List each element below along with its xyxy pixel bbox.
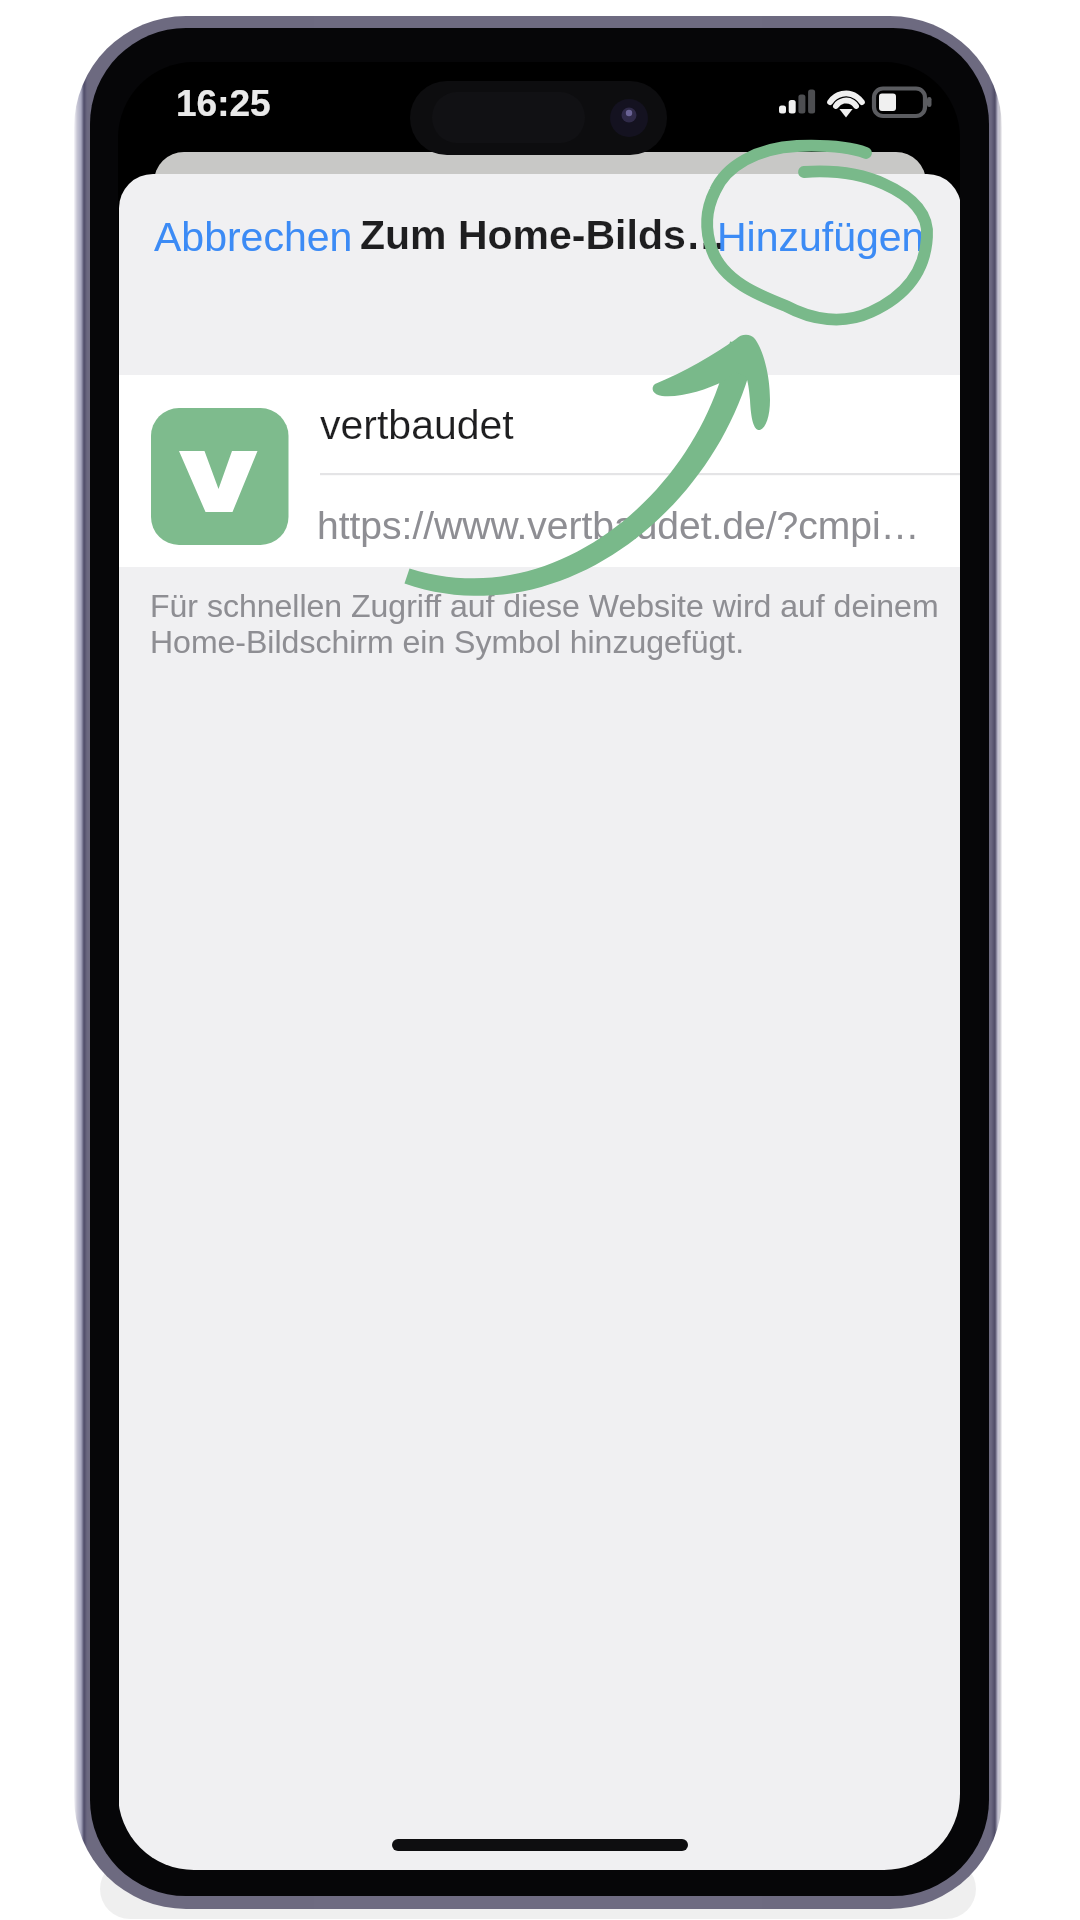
staticText: Für schnellen Zugriff auf diese Website … <box>150 588 950 660</box>
staticText: 16:25 <box>176 83 271 124</box>
button[interactable]: Hinzufügen <box>703 190 937 286</box>
staticText: Hinzufügen <box>717 214 925 260</box>
button[interactable]: vertbaudet <box>119 375 961 474</box>
staticText: Abbrechen <box>154 214 353 260</box>
other: Mobilfunk-Signalstärke <box>772 84 822 120</box>
other: Batteriestand <box>872 84 934 120</box>
staticText: Zum Home-Bilds… <box>360 212 727 258</box>
other: WLAN verbunden <box>826 84 868 120</box>
staticText: vertbaudet <box>320 402 514 448</box>
button[interactable]: Abbrechen <box>140 190 364 286</box>
staticText: https://www.vertbaudet.de/?cmpi… <box>317 504 920 548</box>
button[interactable]: https://www.vertbaudet.de/?cmpi… <box>119 475 961 567</box>
other: Home-Indikator <box>380 1826 700 1864</box>
